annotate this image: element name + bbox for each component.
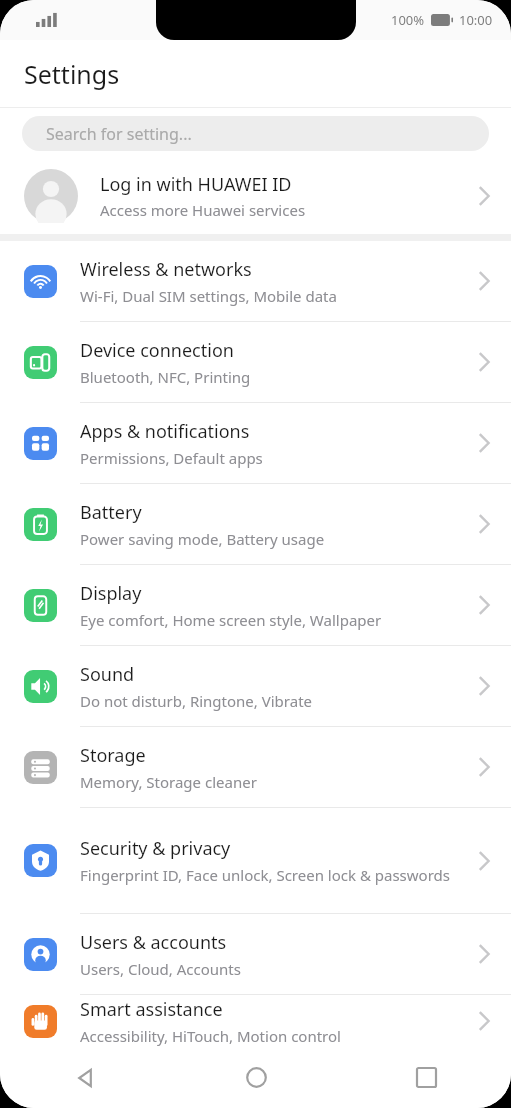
staticText: Wireless & networks (80, 257, 252, 282)
button[interactable]: Log in with HUAWEI ID (0, 158, 511, 234)
staticText: Wi-Fi, Dual SIM settings, Mobile data (80, 286, 337, 306)
staticText: Apps & notifications (80, 419, 250, 444)
button[interactable]: Apps & notifications (0, 403, 511, 483)
button[interactable]: Security & privacy (0, 808, 511, 913)
staticText: Log in with HUAWEI ID (100, 172, 292, 197)
button[interactable]: Smart assistance (0, 995, 511, 1047)
staticText: Fingerprint ID, Face unlock, Screen lock… (80, 865, 450, 885)
button[interactable]: Display (0, 565, 511, 645)
staticText: Security & privacy (80, 836, 231, 861)
staticText: Power saving mode, Battery usage (80, 529, 325, 549)
staticText: Storage (80, 743, 146, 768)
staticText: Settings (24, 57, 120, 91)
staticText: Permissions, Default apps (80, 448, 263, 468)
button[interactable]: Users & accounts (0, 914, 511, 994)
staticText: Memory, Storage cleaner (80, 772, 257, 792)
staticText: Battery (80, 500, 142, 525)
staticText: 100% (391, 11, 425, 29)
button[interactable]: Storage (0, 727, 511, 807)
staticText: Users & accounts (80, 930, 227, 955)
button[interactable]: Wireless & networks (0, 241, 511, 321)
button[interactable]: Back (0, 1047, 171, 1108)
staticText: Bluetooth, NFC, Printing (80, 367, 251, 387)
button[interactable]: Recents (341, 1047, 511, 1108)
staticText: 10:00 (459, 11, 493, 29)
button[interactable]: Search for setting... (22, 116, 489, 151)
staticText: Access more Huawei services (100, 200, 306, 220)
staticText: Users, Cloud, Accounts (80, 959, 241, 979)
staticText: Smart assistance (80, 997, 223, 1022)
staticText: Device connection (80, 338, 234, 363)
button[interactable]: Home (171, 1047, 341, 1108)
staticText: Sound (80, 662, 135, 687)
button[interactable]: Battery (0, 484, 511, 564)
staticText: Display (80, 581, 142, 606)
staticText: Eye comfort, Home screen style, Wallpape… (80, 610, 382, 630)
staticText: Accessibility, HiTouch, Motion control (80, 1026, 341, 1046)
button[interactable]: Sound (0, 646, 511, 726)
button[interactable]: Device connection (0, 322, 511, 402)
staticText: Do not disturb, Ringtone, Vibrate (80, 691, 313, 711)
staticText: Search for setting... (46, 123, 192, 145)
